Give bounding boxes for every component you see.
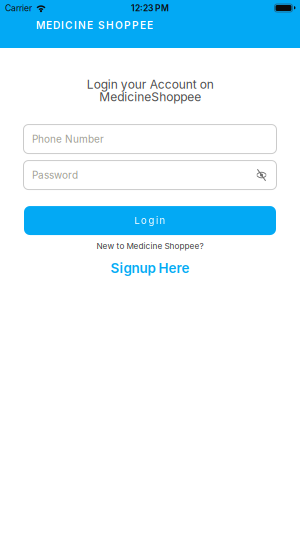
staticText: MEDICINE SHOPPEE xyxy=(36,19,153,31)
staticText: Login xyxy=(134,215,165,226)
staticText: New to Medicine Shoppee? xyxy=(96,241,203,251)
button[interactable]: Signup Here xyxy=(110,251,189,276)
staticText: 12:23 PM xyxy=(131,3,169,13)
staticText: Phone Number xyxy=(32,133,104,145)
staticText: Login your Account on MedicineShoppee xyxy=(86,77,213,104)
staticText: Signup Here xyxy=(110,260,189,276)
staticText: Carrier xyxy=(5,3,32,13)
button[interactable]: Show Password xyxy=(255,169,268,181)
textField[interactable]: Phone Number xyxy=(32,133,268,145)
button[interactable]: Login xyxy=(24,206,276,235)
secureTextField[interactable]: Password xyxy=(32,169,251,181)
staticText: Password xyxy=(32,169,78,181)
